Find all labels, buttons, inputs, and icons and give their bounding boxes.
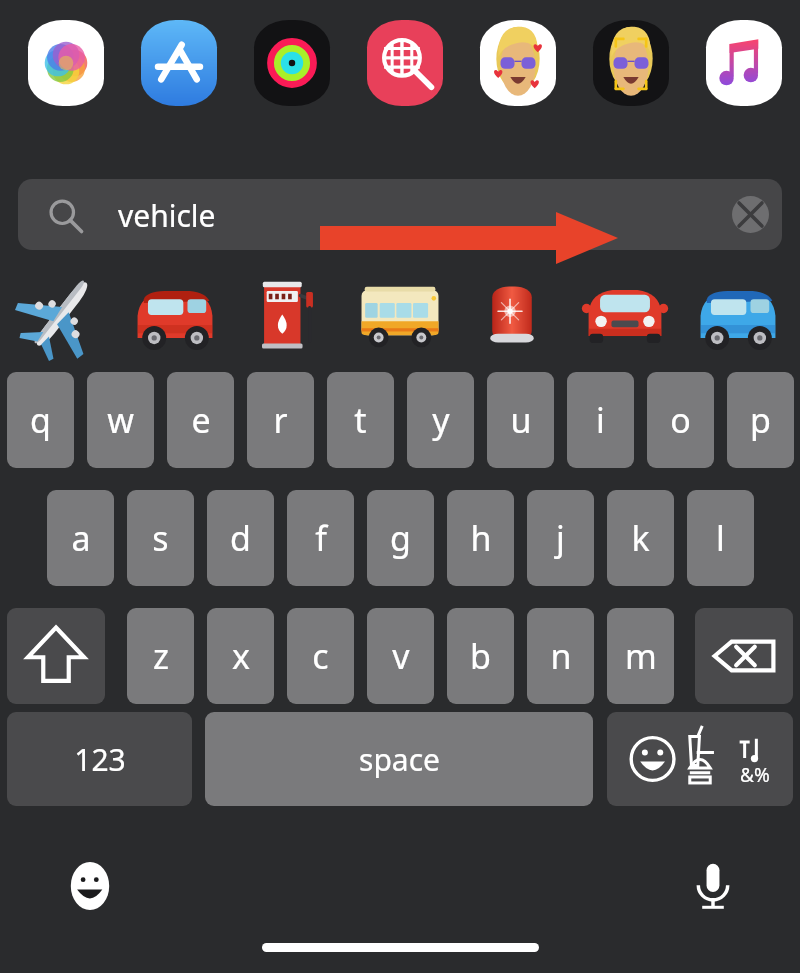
button[interactable]: Emoji keyboard xyxy=(60,856,120,916)
button[interactable]: q xyxy=(7,372,74,468)
staticText: u xyxy=(510,397,532,443)
button[interactable]: k xyxy=(607,490,674,586)
button[interactable]: Backspace xyxy=(695,608,793,704)
button[interactable]: o xyxy=(647,372,714,468)
staticText: q xyxy=(30,397,51,443)
staticText: i xyxy=(596,397,605,443)
button[interactable]: Blue car xyxy=(686,268,790,360)
button[interactable]: j xyxy=(527,490,594,586)
staticText: l xyxy=(716,515,725,561)
staticText: z xyxy=(153,633,169,679)
button[interactable]: m xyxy=(607,608,674,704)
button[interactable]: t xyxy=(327,372,394,468)
button[interactable]: Airplane xyxy=(10,268,114,360)
button[interactable]: Police light xyxy=(460,268,564,360)
button[interactable]: space xyxy=(205,712,593,806)
button[interactable]: s xyxy=(127,490,194,586)
button[interactable]: g xyxy=(367,490,434,586)
staticText: space xyxy=(359,739,440,780)
staticText: c xyxy=(312,633,329,679)
button[interactable]: h xyxy=(447,490,514,586)
button[interactable]: Search xyxy=(18,179,782,250)
button[interactable]: r xyxy=(247,372,314,468)
staticText: m xyxy=(625,633,657,679)
button[interactable]: x xyxy=(207,608,274,704)
staticText: k xyxy=(631,515,650,561)
button[interactable]: l xyxy=(687,490,754,586)
button[interactable]: i xyxy=(567,372,634,468)
staticText: y xyxy=(432,397,450,443)
staticText: &% xyxy=(740,762,770,788)
button[interactable]: Photos xyxy=(28,20,104,106)
button[interactable]: y xyxy=(407,372,474,468)
button[interactable]: v xyxy=(367,608,434,704)
staticText: x xyxy=(232,633,250,679)
button[interactable]: Shift xyxy=(7,608,105,704)
button[interactable]: p xyxy=(727,372,794,468)
button[interactable]: n xyxy=(527,608,594,704)
button[interactable]: c xyxy=(287,608,354,704)
button[interactable]: Emoji and symbols keyboard xyxy=(607,712,793,806)
staticText: w xyxy=(107,397,134,443)
staticText: s xyxy=(152,515,169,561)
staticText: j xyxy=(556,515,565,561)
button[interactable]: Memoji xyxy=(480,20,556,106)
button[interactable]: w xyxy=(87,372,154,468)
button[interactable]: d xyxy=(207,490,274,586)
staticText: f xyxy=(315,515,327,561)
staticText: h xyxy=(470,515,492,561)
other: Search xyxy=(48,198,82,232)
button[interactable]: 123 xyxy=(7,712,192,806)
staticText: b xyxy=(470,633,491,679)
button[interactable]: a xyxy=(47,490,114,586)
button[interactable]: Dictation xyxy=(683,856,743,916)
button[interactable]: f xyxy=(287,490,354,586)
staticText: t xyxy=(354,397,367,443)
staticText: 123 xyxy=(74,739,126,780)
button[interactable]: Oncoming automobile xyxy=(573,268,677,360)
staticText: e xyxy=(191,397,211,443)
button[interactable]: App Store xyxy=(141,20,217,106)
button[interactable]: Search xyxy=(367,20,443,106)
button[interactable]: e xyxy=(167,372,234,468)
staticText: n xyxy=(550,633,572,679)
staticText: p xyxy=(750,397,771,443)
button[interactable]: Memoji scan xyxy=(593,20,669,106)
button[interactable]: u xyxy=(487,372,554,468)
button[interactable]: Bus xyxy=(348,268,452,360)
button[interactable]: z xyxy=(127,608,194,704)
staticText: v xyxy=(392,633,410,679)
staticText: a xyxy=(71,515,91,561)
staticText: vehicle xyxy=(118,195,216,236)
button[interactable]: Fitness xyxy=(254,20,330,106)
button[interactable]: Clear text xyxy=(732,196,769,233)
staticText: g xyxy=(390,515,411,561)
staticText: o xyxy=(670,397,691,443)
button[interactable]: Fuel pump xyxy=(236,268,340,360)
staticText: r xyxy=(273,397,288,443)
button[interactable]: Automobile xyxy=(123,268,227,360)
button[interactable]: b xyxy=(447,608,514,704)
button[interactable]: Music xyxy=(706,20,782,106)
staticText: d xyxy=(230,515,251,561)
